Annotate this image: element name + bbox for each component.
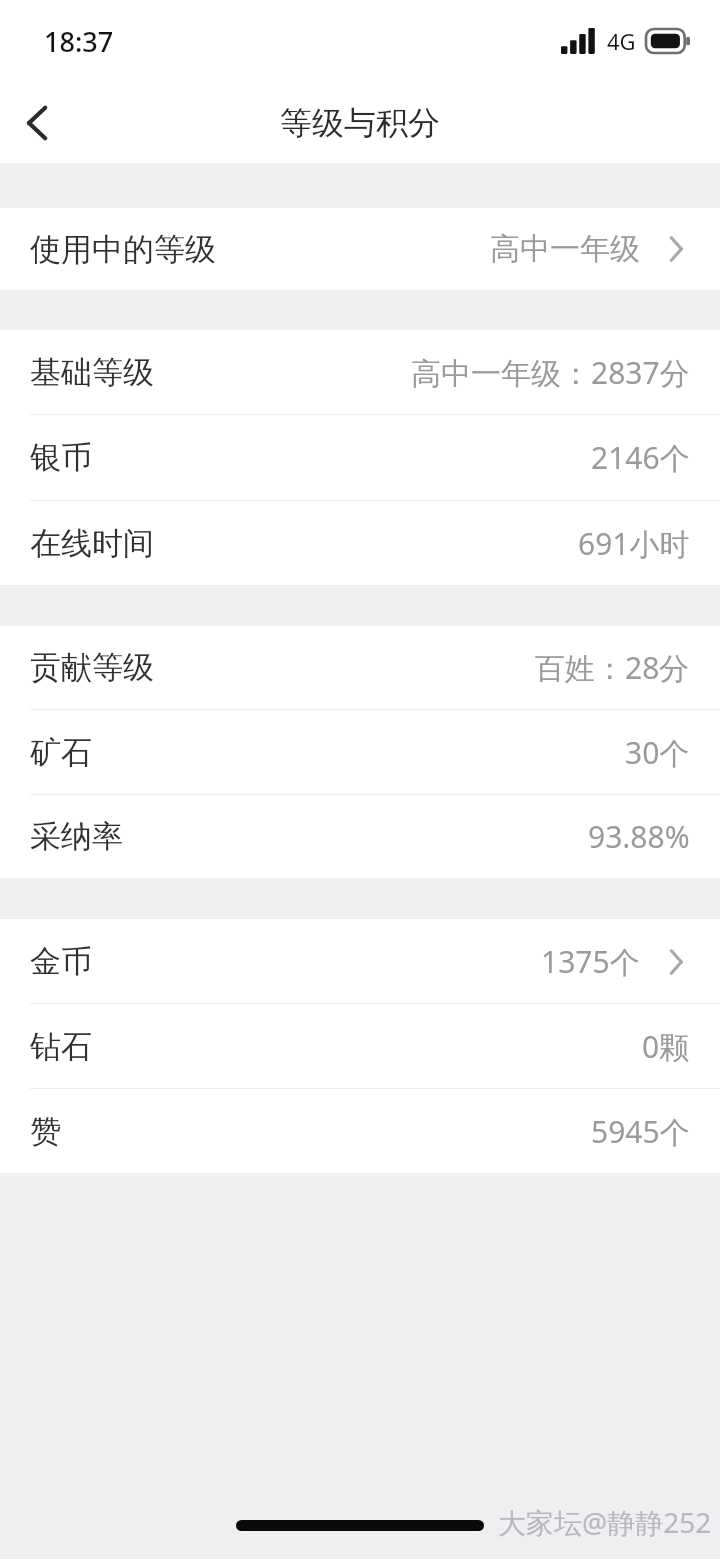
button[interactable]: 采纳率 bbox=[0, 795, 720, 878]
staticText: 基础等级 bbox=[30, 353, 154, 392]
button[interactable]: 矿石 bbox=[0, 710, 720, 794]
staticText: 5945个 bbox=[591, 1111, 690, 1152]
staticText: 钻石 bbox=[30, 1027, 92, 1066]
staticText: 使用中的等级 bbox=[30, 230, 216, 269]
staticText: 等级与积分 bbox=[280, 103, 440, 143]
staticText: 691小时 bbox=[578, 523, 690, 564]
staticText: 矿石 bbox=[30, 733, 92, 772]
staticText: 百姓：28分 bbox=[535, 647, 690, 688]
staticText: 0颗 bbox=[642, 1026, 690, 1067]
button[interactable]: 使用中的等级 bbox=[0, 208, 720, 290]
staticText: 1375个 bbox=[541, 941, 640, 982]
button[interactable]: 在线时间 bbox=[0, 501, 720, 585]
staticText: 贡献等级 bbox=[30, 648, 154, 687]
staticText: 大家坛@静静252 bbox=[498, 1503, 712, 1541]
staticText: 银币 bbox=[30, 438, 92, 477]
staticText: 高中一年级：2837分 bbox=[411, 352, 690, 393]
staticText: 4G bbox=[607, 26, 636, 56]
staticText: 采纳率 bbox=[30, 817, 123, 856]
button[interactable]: 银币 bbox=[0, 415, 720, 500]
staticText: 金币 bbox=[30, 942, 92, 981]
button[interactable]: 金币 bbox=[0, 919, 720, 1003]
button[interactable]: Back bbox=[0, 85, 76, 161]
button[interactable]: 钻石 bbox=[0, 1004, 720, 1088]
staticText: 93.88% bbox=[588, 816, 690, 857]
staticText: 在线时间 bbox=[30, 524, 154, 563]
staticText: 赞 bbox=[30, 1112, 61, 1151]
button[interactable]: 赞 bbox=[0, 1089, 720, 1173]
staticText: 高中一年级 bbox=[490, 230, 640, 268]
staticText: 18:37 bbox=[44, 23, 114, 60]
staticText: 30个 bbox=[625, 732, 690, 773]
button[interactable]: 基础等级 bbox=[0, 330, 720, 414]
staticText: 2146个 bbox=[591, 437, 690, 478]
button[interactable]: 贡献等级 bbox=[0, 626, 720, 709]
